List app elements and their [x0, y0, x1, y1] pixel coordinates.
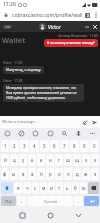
staticText: 1: [4, 143, 7, 149]
button[interactable]: 8: [70, 140, 79, 152]
button[interactable]: л: [64, 168, 72, 180]
button[interactable]: Symbols: [1, 196, 16, 206]
button[interactable]: ы: [10, 168, 18, 180]
staticText: т: [58, 185, 61, 191]
button[interactable]: щ: [73, 154, 81, 166]
staticText: Wallet: [2, 35, 26, 45]
button[interactable]: GIF: [31, 129, 40, 138]
staticText: Заговор Медонова · 17:43: [58, 34, 98, 38]
staticText: г: [58, 157, 60, 163]
button[interactable]: ь: [64, 182, 71, 194]
button[interactable]: с: [32, 182, 39, 194]
button[interactable]: More options: [92, 11, 99, 19]
button[interactable]: п: [37, 168, 45, 180]
staticText: 2: [87, 14, 89, 18]
staticText: А по какому отвечаем выводу?: [47, 41, 95, 45]
button[interactable]: з: [82, 154, 90, 166]
staticText: 8: [73, 143, 76, 149]
button[interactable]: Home: [44, 209, 56, 221]
button[interactable]: х: [91, 154, 99, 166]
button[interactable]: Space: [27, 196, 73, 206]
button[interactable]: ф: [1, 168, 9, 180]
staticText: а: [31, 171, 34, 177]
button[interactable]: в: [19, 168, 27, 180]
button[interactable]: Enter: [84, 196, 99, 206]
button[interactable]: 4: [30, 140, 39, 152]
button[interactable]: т: [56, 182, 63, 194]
button[interactable]: к: [28, 154, 36, 166]
staticText: б: [74, 185, 77, 191]
button[interactable]: Keyboard settings: [88, 129, 97, 138]
button[interactable]: 3: [20, 140, 29, 152]
staticText: ч: [26, 185, 29, 191]
button[interactable]: 1: [1, 140, 9, 152]
button[interactable]: ,: [17, 196, 26, 206]
staticText: э: [94, 171, 97, 177]
button[interactable]: я: [14, 182, 22, 194]
button[interactable]: ю: [80, 182, 87, 194]
button[interactable]: ж: [82, 168, 90, 180]
button[interactable]: р: [46, 168, 54, 180]
staticText: к: [31, 157, 34, 163]
staticText: ф: [3, 171, 7, 177]
staticText: ,: [21, 198, 23, 204]
staticText: в: [22, 171, 25, 177]
button[interactable]: Voice input: [74, 129, 83, 138]
button[interactable]: и: [48, 182, 55, 194]
button[interactable]: .: [74, 196, 83, 206]
staticText: Менеджер проверил выплату и выяснил, что…: [6, 86, 81, 100]
staticText: у: [22, 157, 25, 163]
staticText: ?1☺: [5, 199, 12, 204]
button[interactable]: н: [46, 154, 54, 166]
button[interactable]: Stickers: [17, 129, 26, 138]
button[interactable]: г: [55, 154, 63, 166]
button[interactable]: Shift: [1, 182, 13, 194]
staticText: щ: [75, 157, 79, 163]
button[interactable]: ц: [10, 154, 18, 166]
staticText: Русский: [44, 199, 57, 204]
button[interactable]: 9: [80, 140, 89, 152]
button[interactable]: Search: [60, 129, 69, 138]
button[interactable]: Minimize: [83, 23, 91, 31]
staticText: .: [78, 198, 80, 204]
button[interactable]: е: [37, 154, 45, 166]
staticText: р: [49, 171, 52, 177]
button[interactable]: Google assistant: [3, 129, 12, 138]
button[interactable]: 0: [90, 140, 99, 152]
staticText: Victor: [48, 24, 61, 30]
staticText: и: [50, 185, 53, 191]
button[interactable]: 7: [60, 140, 69, 152]
button[interactable]: Emoji: [46, 129, 55, 138]
staticText: Write a message...: [2, 119, 39, 125]
button[interactable]: Attach file: [81, 118, 89, 126]
button[interactable]: Close chat: [91, 23, 99, 31]
staticText: 17:26: [3, 1, 16, 8]
staticText: 9: [83, 143, 86, 149]
button[interactable]: Back: [72, 209, 84, 221]
button[interactable]: Open tabs: [83, 11, 92, 20]
button[interactable]: д: [73, 168, 81, 180]
button[interactable]: Site information: [2, 11, 10, 19]
button[interactable]: Send message: [90, 118, 98, 126]
button[interactable]: э: [91, 168, 99, 180]
button[interactable]: chat: [3, 25, 12, 29]
button[interactable]: 5: [40, 140, 49, 152]
button[interactable]: Backspace: [88, 182, 99, 194]
button[interactable]: м: [40, 182, 47, 194]
button[interactable]: Recent apps: [16, 209, 28, 221]
staticText: з: [85, 157, 88, 163]
button[interactable]: у: [19, 154, 27, 166]
button[interactable]: а: [28, 168, 36, 180]
button[interactable]: 2: [10, 140, 19, 152]
staticText: 6: [53, 143, 56, 149]
staticText: й: [4, 157, 7, 163]
button[interactable]: о: [55, 168, 63, 180]
button[interactable]: ч: [23, 182, 31, 194]
staticText: ы: [12, 171, 16, 177]
button[interactable]: й: [1, 154, 9, 166]
button[interactable]: б: [72, 182, 79, 194]
staticText: я: [17, 185, 20, 191]
button[interactable]: ш: [64, 154, 72, 166]
button[interactable]: 6: [50, 140, 59, 152]
staticText: п: [40, 171, 43, 177]
